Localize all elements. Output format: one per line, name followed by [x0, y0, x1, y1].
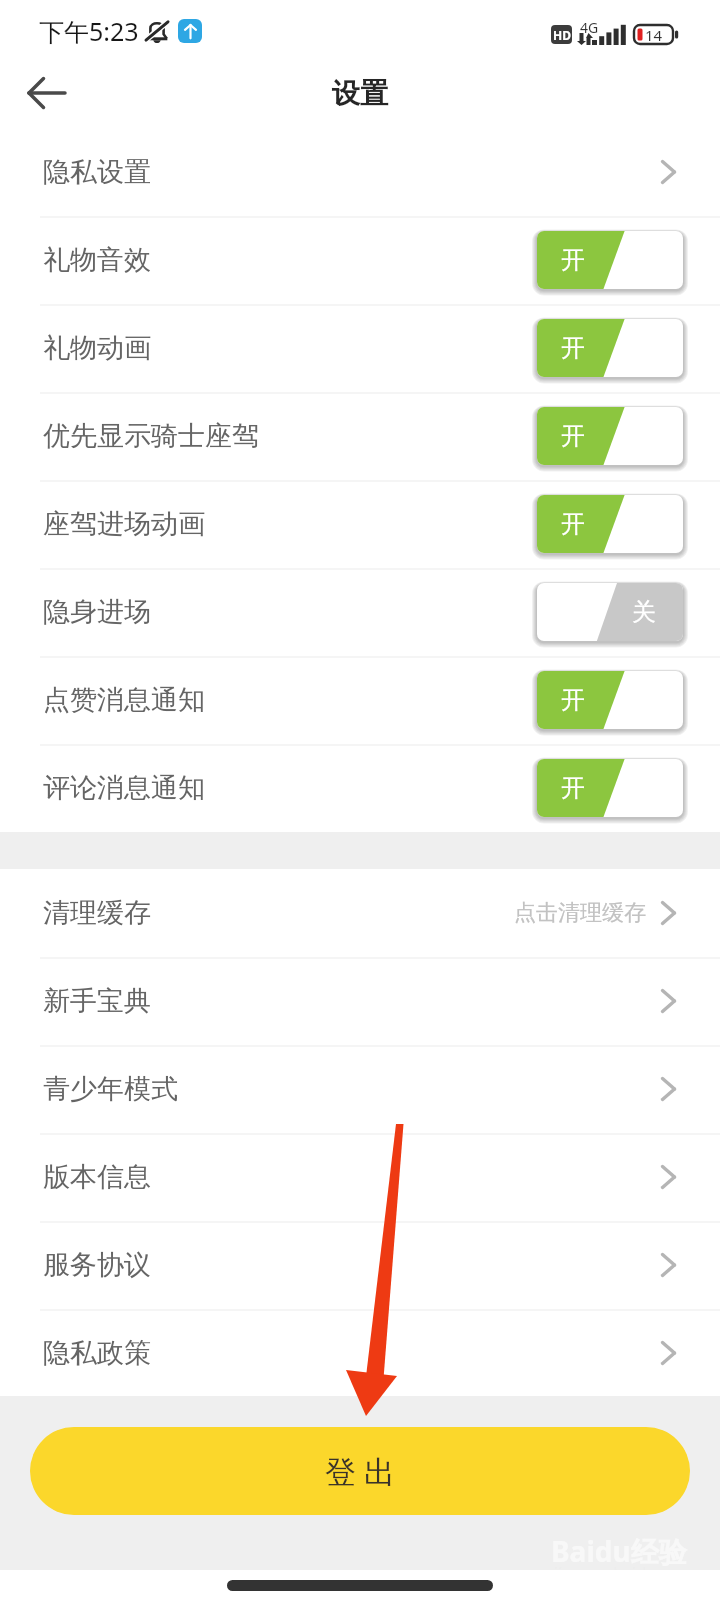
button[interactable]: 服务协议: [0, 1221, 720, 1309]
staticText: 优先显示骑士座驾: [43, 419, 259, 453]
button[interactable]: 开: [537, 231, 683, 289]
staticText: 关: [632, 597, 656, 627]
staticText: 服务协议: [43, 1248, 151, 1282]
button[interactable]: Back: [19, 66, 73, 120]
staticText: Baidu经验: [551, 1532, 687, 1570]
staticText: 开: [561, 421, 585, 451]
button[interactable]: 关: [537, 583, 683, 641]
staticText: 开: [561, 773, 585, 803]
button[interactable]: 开: [537, 407, 683, 465]
button[interactable]: 评论消息通知: [0, 744, 720, 832]
button[interactable]: 开: [537, 319, 683, 377]
button[interactable]: 点赞消息通知: [0, 656, 720, 744]
button[interactable]: 登 出: [30, 1427, 690, 1515]
staticText: 开: [561, 685, 585, 715]
button[interactable]: 隐私设置: [0, 128, 720, 216]
staticText: 开: [561, 245, 585, 275]
staticText: jingyan.baidu.com: [554, 1562, 693, 1584]
staticText: 青少年模式: [43, 1072, 178, 1106]
button[interactable]: 新手宝典: [0, 957, 720, 1045]
button[interactable]: 版本信息: [0, 1133, 720, 1221]
staticText: 4G: [580, 18, 599, 37]
staticText: 座驾进场动画: [43, 507, 205, 541]
staticText: 评论消息通知: [43, 771, 205, 805]
staticText: 礼物音效: [43, 243, 151, 277]
staticText: 礼物动画: [43, 331, 151, 365]
staticText: 隐私政策: [43, 1336, 151, 1370]
button[interactable]: 优先显示骑士座驾: [0, 392, 720, 480]
button[interactable]: 开: [537, 495, 683, 553]
staticText: 登 出: [325, 1450, 396, 1492]
staticText: 版本信息: [43, 1160, 151, 1194]
button[interactable]: 隐身进场: [0, 568, 720, 656]
staticText: 新手宝典: [43, 984, 151, 1018]
staticText: 点赞消息通知: [43, 683, 205, 717]
staticText: 隐私设置: [43, 155, 151, 189]
button[interactable]: 开: [537, 671, 683, 729]
staticText: HD: [553, 27, 571, 43]
staticText: 下午5:23: [39, 14, 139, 48]
staticText: 14: [645, 25, 663, 44]
button[interactable]: 座驾进场动画: [0, 480, 720, 568]
button[interactable]: 隐私政策: [0, 1309, 720, 1397]
staticText: 开: [561, 509, 585, 539]
staticText: 开: [561, 333, 585, 363]
button[interactable]: 礼物动画: [0, 304, 720, 392]
staticText: 隐身进场: [43, 595, 151, 629]
staticText: 设置: [332, 76, 388, 111]
staticText: 清理缓存: [43, 896, 151, 930]
button[interactable]: 青少年模式: [0, 1045, 720, 1133]
button[interactable]: 清理缓存: [0, 869, 720, 957]
button[interactable]: 开: [537, 759, 683, 817]
staticText: 点击清理缓存: [514, 899, 646, 927]
button[interactable]: 礼物音效: [0, 216, 720, 304]
